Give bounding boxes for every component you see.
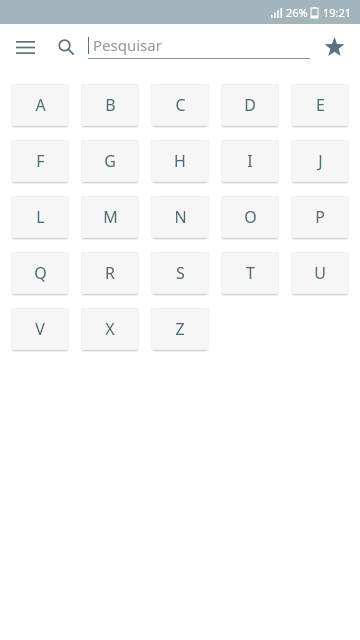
staticText: E [316,94,325,116]
staticText: D [244,94,256,116]
button[interactable]: Pesquisar [88,35,310,59]
button[interactable]: F [11,139,69,182]
staticText: P [315,206,325,228]
button[interactable]: E [291,83,349,126]
staticText: C [175,94,186,116]
staticText: S [176,262,185,284]
button[interactable]: O [221,195,279,238]
staticText: Q [34,262,47,284]
button[interactable]: L [11,195,69,238]
button[interactable]: M [81,195,139,238]
staticText: L [36,206,45,228]
button[interactable]: R [81,251,139,294]
button[interactable]: U [291,251,349,294]
staticText: H [174,150,186,172]
button[interactable]: B [81,83,139,126]
button[interactable]: Open navigation menu [10,32,40,62]
staticText: R [105,262,115,284]
staticText: Pesquisar [93,35,162,55]
staticText: G [104,150,116,172]
staticText: 26% [286,5,308,20]
button[interactable]: C [151,83,209,126]
staticText: T [246,262,255,284]
button[interactable]: Favorites [318,31,350,63]
staticText: X [105,318,115,340]
staticText: M [103,206,118,228]
button[interactable]: Search [53,34,79,60]
staticText: A [35,94,46,116]
staticText: U [314,262,326,284]
button[interactable]: H [151,139,209,182]
button[interactable]: T [221,251,279,294]
staticText: V [35,318,45,340]
button[interactable]: V [11,307,69,350]
staticText: B [105,94,116,116]
staticText: 19:21 [323,5,352,20]
staticText: O [244,206,257,228]
button[interactable]: D [221,83,279,126]
button[interactable]: A [11,83,69,126]
staticText: N [174,206,187,228]
button[interactable]: Q [11,251,69,294]
button[interactable]: Z [151,307,209,350]
button[interactable]: X [81,307,139,350]
button[interactable]: N [151,195,209,238]
staticText: J [318,150,323,172]
button[interactable]: J [291,139,349,182]
button[interactable]: S [151,251,209,294]
button[interactable]: I [221,139,279,182]
staticText: F [36,150,45,172]
staticText: I [247,150,253,172]
button[interactable]: G [81,139,139,182]
button[interactable]: P [291,195,349,238]
staticText: Z [175,318,185,340]
